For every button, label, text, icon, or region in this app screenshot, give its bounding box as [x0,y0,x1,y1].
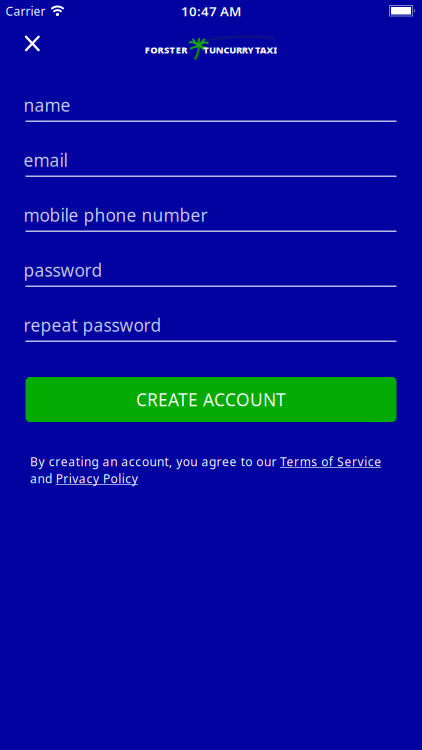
staticText: 10:47 AM [181,2,241,20]
staticText: email [23,148,67,171]
staticText: FORSTER [145,44,187,56]
staticText: Carrier [5,3,45,19]
staticText: name [23,93,70,116]
staticText: mobile phone number [23,203,207,226]
button[interactable]: CREATE ACCOUNT [25,377,396,422]
button[interactable]: Terms of Service [280,453,381,469]
staticText: TUNCURRY TAXI [203,44,277,56]
button[interactable]: mobile phone number [25,204,396,232]
staticText: password [23,258,102,281]
button[interactable]: Close [0,24,39,63]
staticText: and [30,470,56,486]
button[interactable]: repeat password [25,314,396,342]
button[interactable]: email [25,149,396,177]
button[interactable]: Privacy Policy [56,470,138,486]
button[interactable]: password [25,259,396,287]
staticText: Terms of Service [280,453,381,469]
staticText: repeat password [23,313,161,336]
staticText: CREATE ACCOUNT [136,388,286,411]
staticText: Privacy Policy [56,470,138,486]
staticText: By creating an account, you agree to our [30,453,280,469]
button[interactable]: name [25,94,396,122]
